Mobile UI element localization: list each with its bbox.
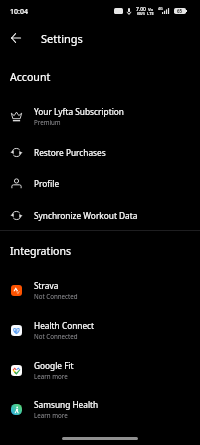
- staticText: Restore Purchases: [34, 147, 106, 158]
- button[interactable]: Google Fit: [0, 351, 200, 391]
- staticText: 10:04: [10, 7, 28, 17]
- staticText: Google Fit: [34, 360, 74, 371]
- button[interactable]: Strava: [0, 271, 200, 311]
- staticText: 4G: [158, 6, 163, 11]
- staticText: Strava: [34, 280, 59, 291]
- staticText: 65: [177, 8, 183, 14]
- staticText: Account: [10, 70, 51, 84]
- button[interactable]: Samsung Health: [0, 390, 200, 430]
- staticText: Your Lyfta Subscription: [34, 106, 124, 117]
- staticText: LTE: [147, 11, 154, 17]
- staticText: Integrations: [10, 244, 72, 258]
- staticText: Settings: [41, 31, 83, 46]
- staticText: Samsung Health: [34, 399, 99, 410]
- staticText: Profile: [34, 178, 60, 189]
- button[interactable]: Health Connect: [0, 311, 200, 351]
- staticText: KB/S: [137, 11, 145, 16]
- button[interactable]: Profile: [0, 167, 200, 199]
- staticText: Not Connected: [34, 292, 78, 300]
- staticText: Health Connect: [34, 320, 95, 331]
- staticText: Not Connected: [34, 332, 78, 340]
- button[interactable]: Back: [2, 27, 30, 49]
- staticText: Learn more: [34, 411, 68, 419]
- staticText: Learn more: [34, 372, 68, 380]
- staticText: Vo: [148, 7, 154, 13]
- staticText: 7.00: [136, 6, 146, 13]
- button[interactable]: Your Lyfta Subscription: [0, 97, 200, 137]
- staticText: Premium: [34, 118, 61, 126]
- staticText: Synchronize Workout Data: [34, 210, 138, 221]
- button[interactable]: Restore Purchases: [0, 136, 200, 168]
- button[interactable]: Synchronize Workout Data: [0, 199, 200, 231]
